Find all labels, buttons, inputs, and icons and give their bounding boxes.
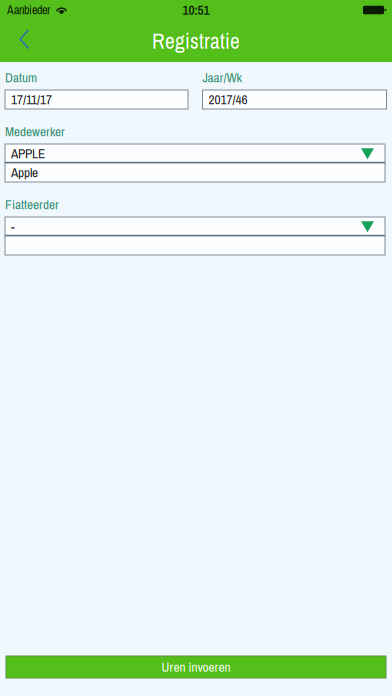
- staticText: Apple: [11, 163, 38, 181]
- button[interactable]: Uren invoeren: [6, 656, 386, 678]
- staticText: 10:51: [182, 1, 209, 19]
- staticText: 2017/46: [208, 90, 247, 108]
- button[interactable]: -: [5, 217, 385, 236]
- staticText: Datum: [5, 68, 37, 86]
- button[interactable]: Back: [0, 20, 52, 62]
- staticText: Medewerker: [5, 122, 65, 140]
- staticText: Fiatteerder: [5, 195, 59, 213]
- staticText: -: [11, 217, 15, 235]
- staticText: Registratie: [152, 27, 240, 55]
- staticText: Aanbieder: [7, 2, 50, 18]
- staticText: Jaar/Wk: [202, 68, 241, 86]
- staticText: APPLE: [11, 144, 45, 162]
- staticText: Uren invoeren: [161, 658, 230, 676]
- staticText: 17/11/17: [11, 90, 52, 108]
- button[interactable]: APPLE: [5, 144, 385, 163]
